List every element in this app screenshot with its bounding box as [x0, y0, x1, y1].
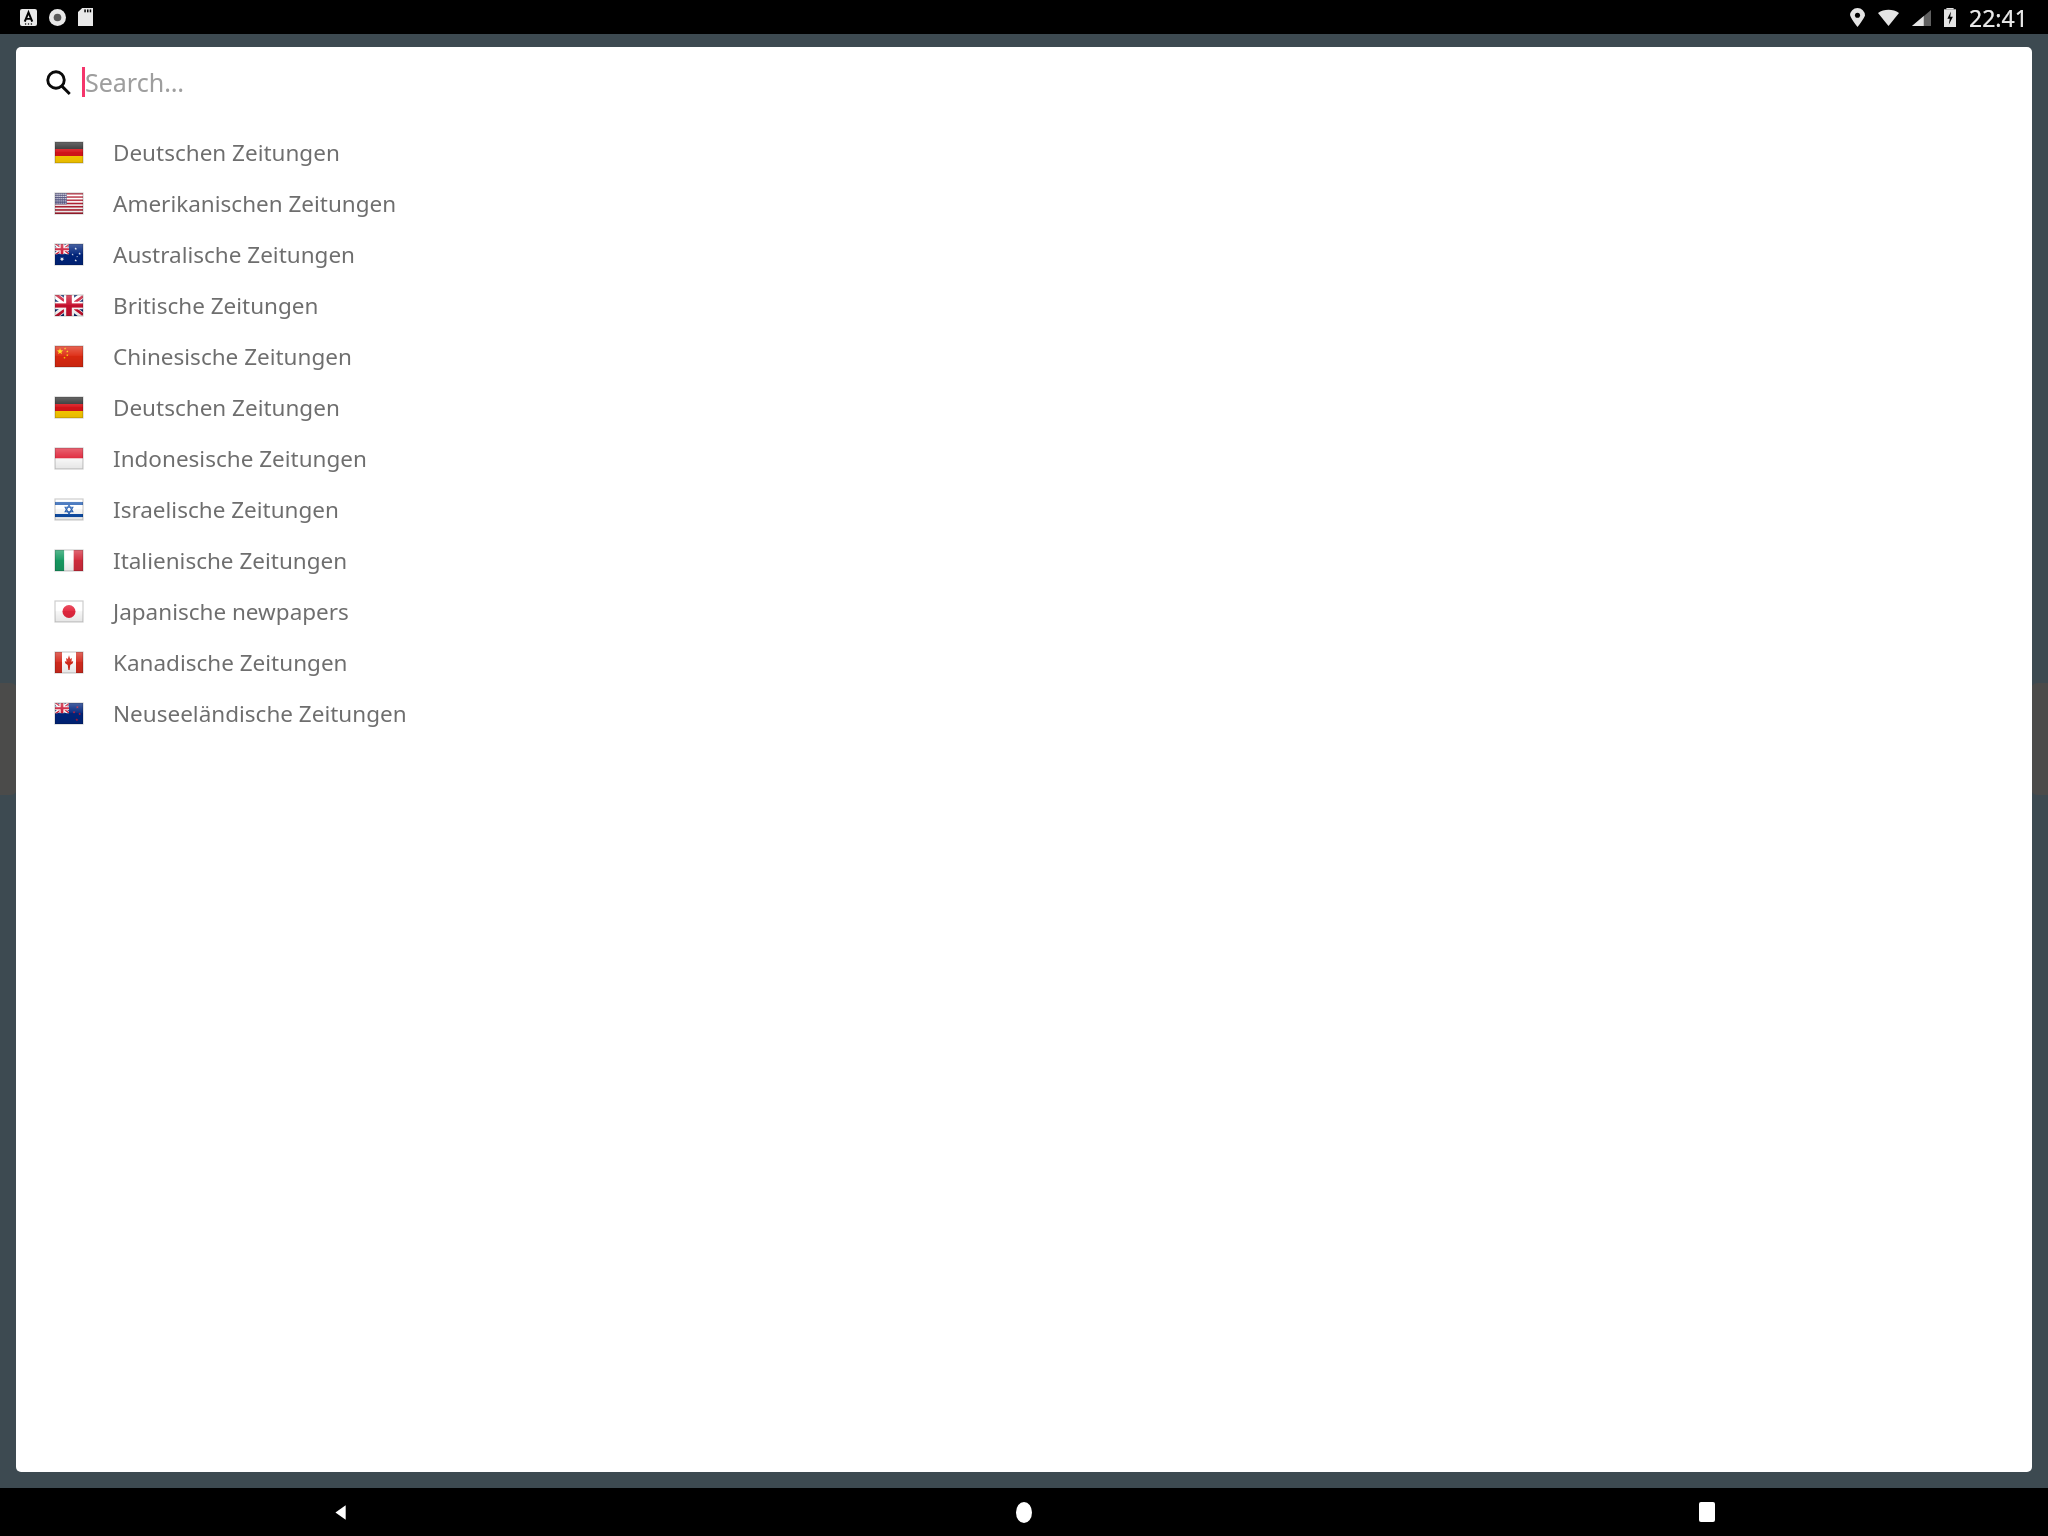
button[interactable]: Britische Zeitungen — [16, 280, 2032, 331]
staticText: Search… — [85, 65, 184, 99]
staticText: Indonesische Zeitungen — [113, 443, 367, 474]
button[interactable]: Chinesische Zeitungen — [16, 331, 2032, 382]
staticText: Neuseeländische Zeitungen — [113, 698, 407, 729]
button[interactable]: Indonesische Zeitungen — [16, 433, 2032, 484]
button[interactable]: Neuseeländische Zeitungen — [16, 688, 2032, 739]
button[interactable]: Search — [16, 47, 2032, 117]
staticText: Australische Zeitungen — [113, 239, 356, 270]
staticText: Amerikanischen Zeitungen — [113, 188, 397, 219]
staticText: Italienische Zeitungen — [113, 545, 348, 576]
button[interactable]: Recent apps — [1365, 1488, 2048, 1536]
staticText: Britische Zeitungen — [113, 290, 319, 321]
other: Search — [46, 70, 71, 95]
staticText: Deutschen Zeitungen — [113, 137, 340, 168]
button[interactable]: Home — [682, 1488, 1365, 1536]
button[interactable]: Amerikanischen Zeitungen — [16, 178, 2032, 229]
staticText: Israelische Zeitungen — [113, 494, 339, 525]
staticText: 22:41 — [1969, 2, 2028, 33]
button[interactable]: Israelische Zeitungen — [16, 484, 2032, 535]
button[interactable]: Deutschen Zeitungen — [16, 127, 2032, 178]
button[interactable]: Japanische newpapers — [16, 586, 2032, 637]
staticText: Chinesische Zeitungen — [113, 341, 352, 372]
button[interactable]: Back — [0, 1488, 682, 1536]
button[interactable]: Italienische Zeitungen — [16, 535, 2032, 586]
button[interactable]: Australische Zeitungen — [16, 229, 2032, 280]
staticText: Deutschen Zeitungen — [113, 392, 340, 423]
staticText: Japanische newpapers — [113, 596, 349, 627]
staticText: Kanadische Zeitungen — [113, 647, 348, 678]
button[interactable]: Deutschen Zeitungen — [16, 382, 2032, 433]
button[interactable]: Kanadische Zeitungen — [16, 637, 2032, 688]
